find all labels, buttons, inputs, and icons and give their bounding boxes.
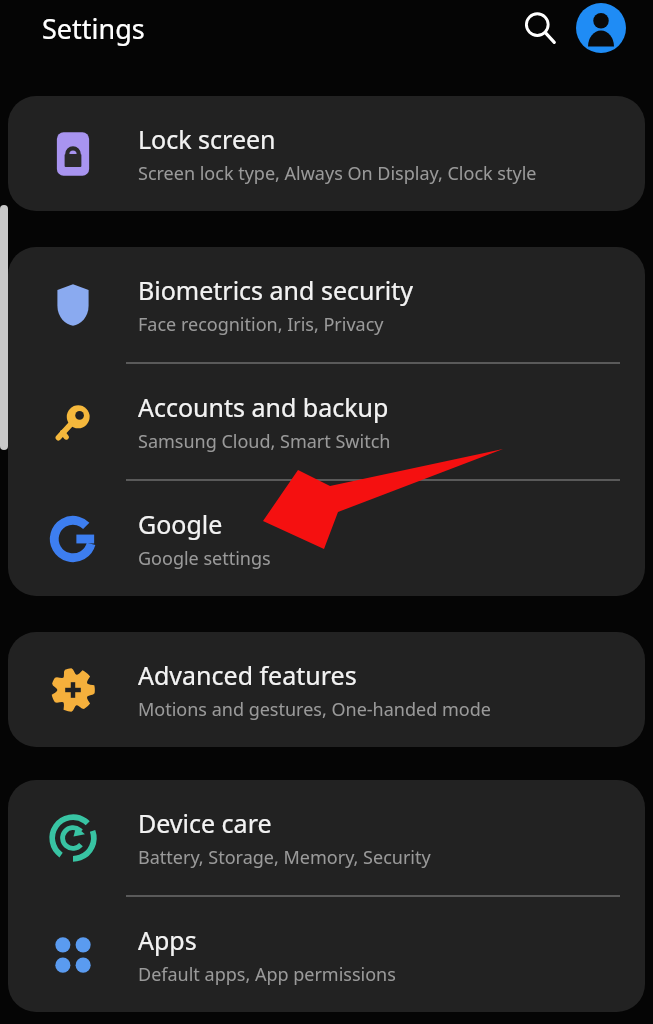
staticText: Advanced features xyxy=(138,658,357,692)
staticText: Default apps, App permissions xyxy=(138,962,396,987)
staticText: Device care xyxy=(138,806,272,840)
staticText: Face recognition, Iris, Privacy xyxy=(138,312,384,337)
staticText: Apps xyxy=(138,923,197,957)
button[interactable]: Advanced features xyxy=(8,632,645,747)
button[interactable]: Search xyxy=(513,1,567,55)
staticText: Lock screen xyxy=(138,122,276,156)
button[interactable]: Google xyxy=(8,481,645,596)
button[interactable]: Apps xyxy=(8,897,645,1012)
staticText: Settings xyxy=(42,10,145,47)
staticText: Google settings xyxy=(138,546,271,571)
button[interactable]: Lock screen xyxy=(8,96,645,211)
staticText: Accounts and backup xyxy=(138,390,389,424)
staticText: Battery, Storage, Memory, Security xyxy=(138,845,431,870)
staticText: Samsung Cloud, Smart Switch xyxy=(138,429,391,454)
button[interactable]: Account xyxy=(573,0,629,56)
staticText: Biometrics and security xyxy=(138,273,414,307)
button[interactable]: Device care xyxy=(8,780,645,895)
button[interactable]: Biometrics and security xyxy=(8,247,645,362)
staticText: Motions and gestures, One-handed mode xyxy=(138,697,491,722)
staticText: Screen lock type, Always On Display, Clo… xyxy=(138,161,537,186)
staticText: Google xyxy=(138,507,223,541)
button[interactable]: Accounts and backup xyxy=(8,364,645,479)
